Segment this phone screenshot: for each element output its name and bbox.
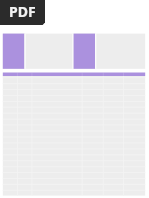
button[interactable]: Open PDF document preview xyxy=(0,0,149,198)
staticText: PDF xyxy=(9,2,36,21)
button[interactable]: PDF file type xyxy=(0,0,45,25)
